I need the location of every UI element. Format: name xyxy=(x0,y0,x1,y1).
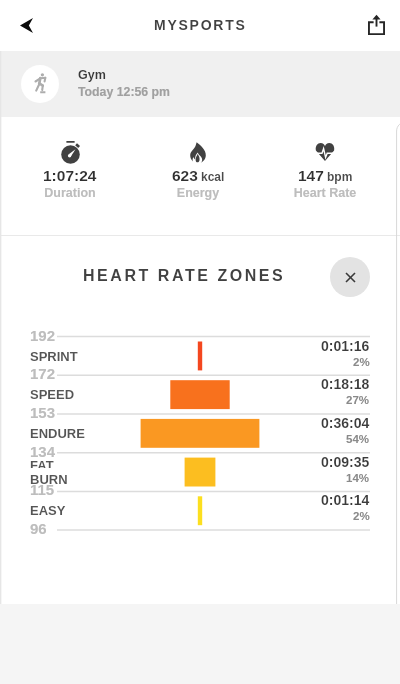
staticText: SPRINT xyxy=(30,349,78,364)
staticText: SPEED xyxy=(30,387,75,402)
staticText: 134 xyxy=(30,443,56,460)
staticText: Gym xyxy=(78,68,106,82)
staticText: 172 xyxy=(30,365,56,382)
staticText: 27% xyxy=(346,394,370,407)
staticText: 0:18:18 xyxy=(321,376,370,392)
staticText: 2% xyxy=(353,356,370,369)
staticText: 115 xyxy=(30,481,55,498)
staticText: ENDURE xyxy=(30,426,85,441)
staticText: 192 xyxy=(30,327,56,344)
staticText: 14% xyxy=(346,472,370,485)
button[interactable]: Back xyxy=(6,5,47,46)
staticText: 0:36:04 xyxy=(321,415,370,431)
staticText: 0:01:14 xyxy=(321,492,370,508)
staticText: 0:01:16 xyxy=(321,338,370,354)
staticText: EASY xyxy=(30,503,66,518)
staticText: 96 xyxy=(30,520,47,537)
staticText: FAT xyxy=(30,458,54,468)
staticText: MYSPORTS xyxy=(154,17,247,33)
staticText: bpm xyxy=(327,170,353,183)
staticText: kcal xyxy=(201,170,225,183)
staticText: Heart Rate xyxy=(265,186,385,200)
staticText: BURN xyxy=(30,472,68,487)
staticText: Today 12:56 pm xyxy=(78,85,171,99)
staticText: Energy xyxy=(138,186,258,200)
staticText: Duration xyxy=(10,186,130,200)
staticText: 0:09:35 xyxy=(321,454,370,470)
staticText: 147 xyxy=(298,167,324,184)
staticText: 623 xyxy=(172,167,198,184)
staticText: HEART RATE ZONES xyxy=(83,267,286,285)
staticText: 1:07:24 xyxy=(43,167,97,184)
staticText: 2% xyxy=(353,510,370,523)
staticText: 54% xyxy=(346,433,370,446)
button[interactable]: Gym xyxy=(0,51,400,117)
button[interactable]: Share xyxy=(356,4,396,44)
button[interactable]: Close xyxy=(330,257,370,297)
staticText: 153 xyxy=(30,404,56,421)
